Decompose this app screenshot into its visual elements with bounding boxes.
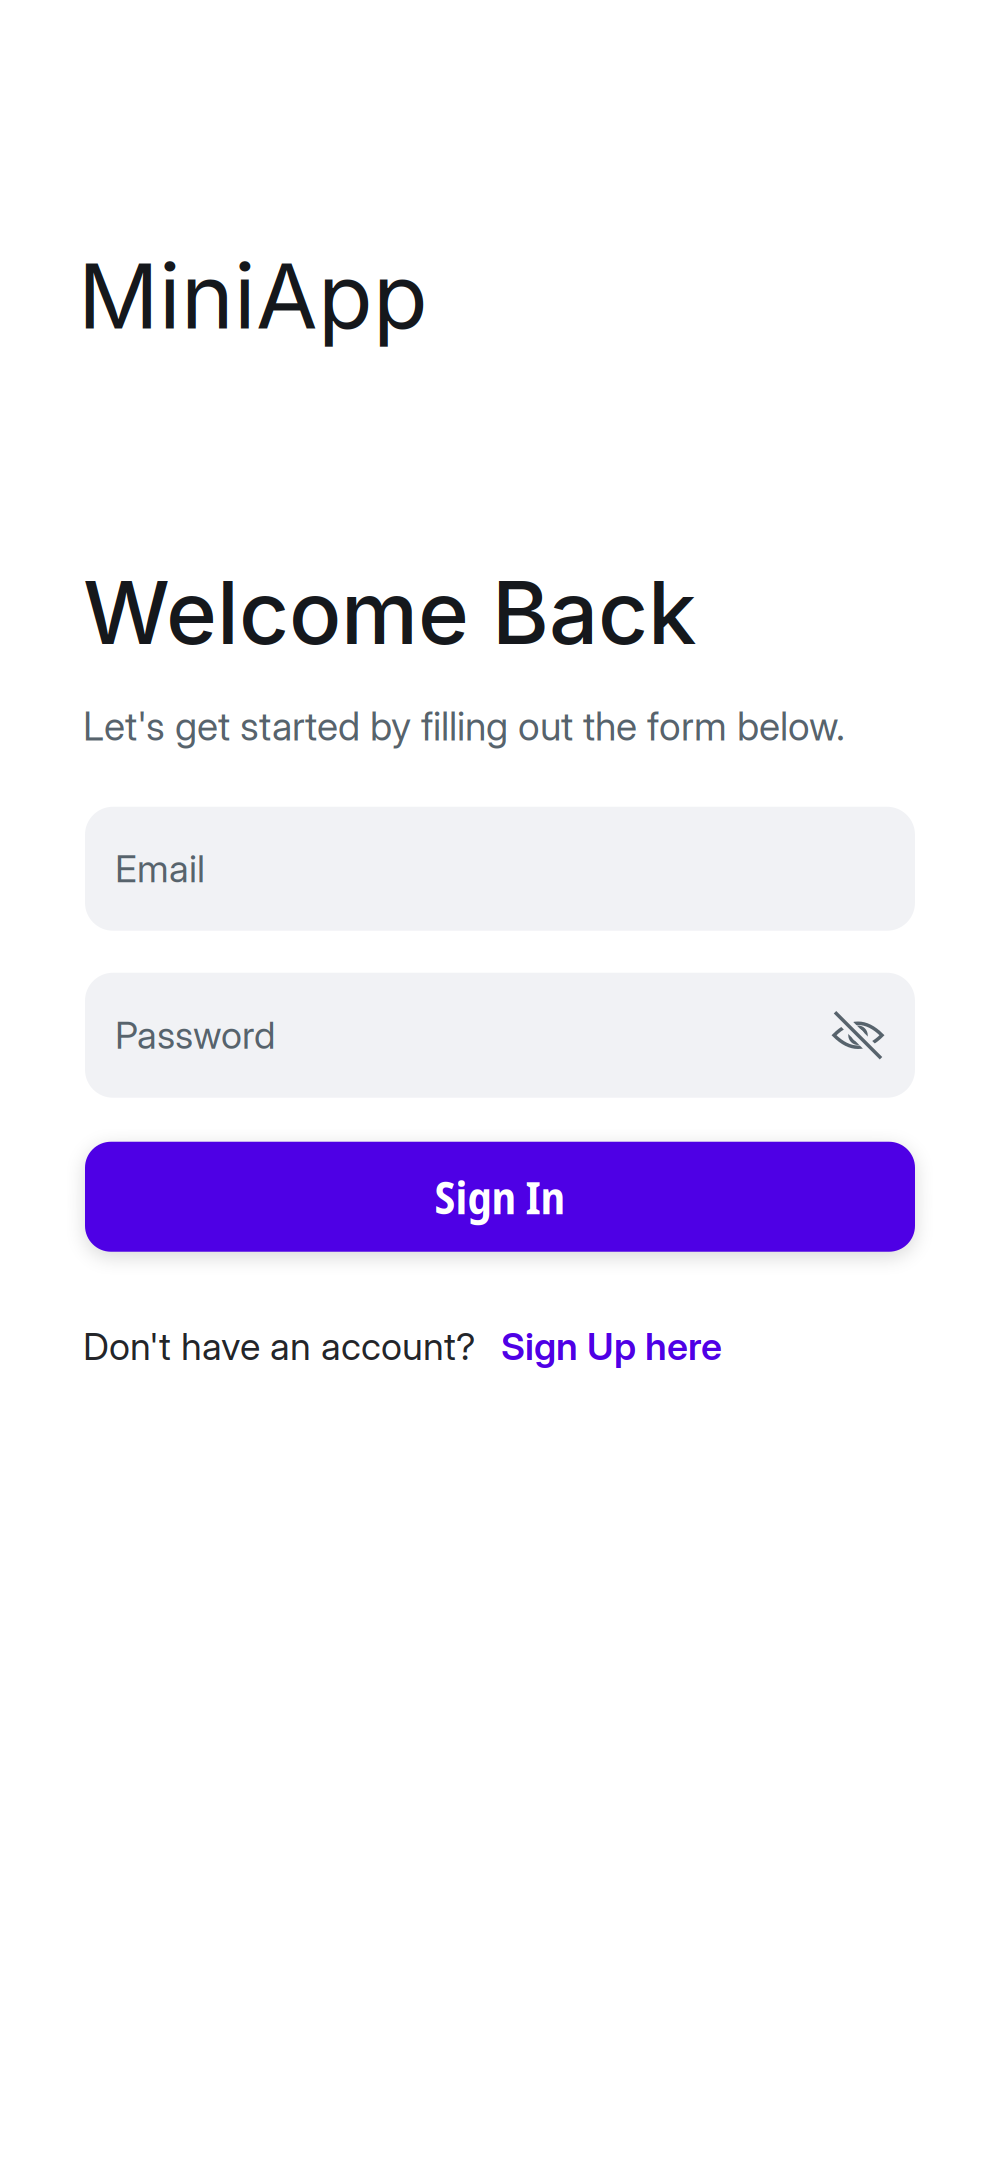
staticText: Password <box>115 1013 275 1058</box>
button[interactable]: Show password <box>831 1009 885 1061</box>
button[interactable]: Sign Up here <box>501 1324 722 1369</box>
button[interactable]: Sign In <box>85 1142 915 1252</box>
staticText: Welcome Back <box>83 560 696 665</box>
staticText: Sign Up here <box>501 1324 722 1369</box>
staticText: Sign In <box>434 1166 565 1228</box>
staticText: MiniApp <box>78 242 428 350</box>
staticText: Don't have an account? <box>83 1324 475 1369</box>
staticText: Email <box>115 846 205 891</box>
staticText: Let's get started by filling out the for… <box>83 703 845 750</box>
